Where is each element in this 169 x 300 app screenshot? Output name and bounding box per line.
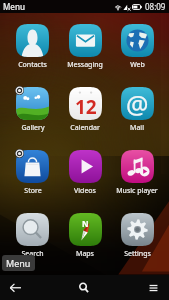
staticText: Search — [21, 249, 44, 259]
button[interactable]: Messaging — [59, 24, 111, 70]
staticText: Menu — [6, 257, 31, 269]
staticText: Gallery — [21, 123, 45, 133]
staticText: 12 — [75, 94, 97, 120]
button[interactable]: Search — [6, 213, 59, 259]
button[interactable]: Store — [6, 150, 59, 196]
button[interactable]: Web — [111, 24, 163, 70]
staticText: Videos — [74, 186, 96, 196]
button[interactable]: Videos — [59, 150, 111, 196]
staticText: Menu — [3, 1, 25, 12]
staticText: 08:09 — [145, 1, 166, 12]
staticText: Mail — [130, 123, 144, 133]
button[interactable]: Back — [1, 275, 29, 300]
button[interactable]: N — [59, 213, 111, 259]
staticText: Contacts — [18, 60, 47, 70]
button[interactable]: Contacts — [6, 24, 59, 70]
staticText: Messaging — [67, 60, 103, 70]
button[interactable]: Search — [70, 275, 98, 300]
button[interactable]: Settings — [111, 213, 163, 259]
button[interactable]: 12 — [59, 87, 111, 133]
staticText: Web — [130, 60, 145, 70]
staticText: Settings — [124, 249, 151, 259]
staticText: N — [82, 218, 89, 229]
button[interactable]: Gallery — [6, 87, 59, 133]
staticText: Music player — [116, 186, 158, 196]
staticText: Maps — [76, 249, 94, 259]
button[interactable]: Options menu — [139, 275, 167, 300]
button[interactable]: @ — [111, 87, 163, 133]
staticText: @ — [126, 87, 149, 120]
button[interactable]: Music player — [111, 150, 163, 196]
staticText: Calendar — [70, 123, 100, 133]
button[interactable]: Menu — [2, 255, 35, 271]
staticText: Store — [24, 186, 42, 196]
